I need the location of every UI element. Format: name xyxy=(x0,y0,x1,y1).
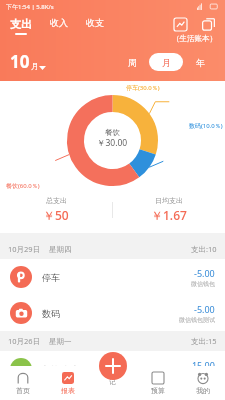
button[interactable]: 餐饮-午餐 xyxy=(0,351,225,387)
staticText: 支出:10 xyxy=(191,244,217,254)
staticText: 月 xyxy=(162,57,171,68)
staticText: （生活账本） xyxy=(172,34,217,43)
button[interactable]: 数码 xyxy=(0,295,225,331)
staticText: 支出:15 xyxy=(191,336,217,346)
button[interactable]: Account books xyxy=(199,15,217,33)
staticText: 记 xyxy=(109,377,116,386)
staticText: 报表 xyxy=(61,386,75,395)
staticText: 日均支出 xyxy=(155,196,183,205)
staticText: ￥30.00 xyxy=(97,137,128,149)
staticText: 停车 xyxy=(42,272,60,283)
staticText: 餐饮(60.0％) xyxy=(6,182,40,190)
button[interactable]: 预算 xyxy=(135,366,180,400)
staticText: 星期一 xyxy=(49,337,72,346)
button[interactable]: Add record xyxy=(99,352,127,380)
staticText: 10月26日 xyxy=(8,336,41,346)
staticText: 预算 xyxy=(151,386,165,395)
staticText: ￥50 xyxy=(43,207,69,223)
button[interactable]: 年 xyxy=(183,53,217,71)
staticText: 10 xyxy=(10,50,30,73)
button[interactable]: 月 xyxy=(149,53,183,71)
staticText: 数码 xyxy=(42,308,60,319)
button[interactable]: 收入 xyxy=(48,15,70,32)
staticText: 星期日 xyxy=(49,392,72,395)
button[interactable]: Chart xyxy=(171,15,189,33)
staticText: 月 xyxy=(31,61,39,71)
staticText: 微信钱包测试 xyxy=(179,316,215,324)
staticText: 停车(30.0％) xyxy=(126,84,160,92)
staticText: 10月18日 xyxy=(8,392,41,395)
staticText: 收入 xyxy=(50,17,68,28)
button[interactable]: 周 xyxy=(115,53,149,71)
staticText: ￥1.67 xyxy=(151,207,187,223)
button[interactable]: 报表 xyxy=(45,366,90,400)
button[interactable]: 支出 xyxy=(8,15,34,37)
staticText: 支出 xyxy=(10,17,32,31)
staticText: 年 xyxy=(196,57,205,68)
staticText: 数码(10.0％) xyxy=(189,122,223,130)
staticText: 支出:15 xyxy=(191,392,217,395)
staticText: 10月29日 xyxy=(8,244,41,254)
staticText: -15.00 xyxy=(189,359,215,371)
staticText: -5.00 xyxy=(194,267,215,279)
staticText: 星期四 xyxy=(49,245,72,254)
button[interactable]: 我的 xyxy=(180,366,225,400)
staticText: 餐饮-午餐 xyxy=(42,363,81,375)
staticText: 收支 xyxy=(86,17,104,28)
staticText: 餐饮 xyxy=(105,128,120,137)
staticText: 总支出 xyxy=(46,196,67,205)
staticText: 微信钱包 xyxy=(191,372,215,380)
staticText: 周 xyxy=(128,57,137,68)
staticText: 微信钱包 xyxy=(191,280,215,288)
button[interactable]: 收支 xyxy=(84,15,106,32)
button[interactable]: 10 xyxy=(10,50,46,73)
staticText: -5.00 xyxy=(194,303,215,315)
button[interactable]: 停车 xyxy=(0,259,225,295)
staticText: 下午1:54 | 5.8K/s xyxy=(6,3,54,11)
staticText: 首页 xyxy=(16,386,30,395)
staticText: 我的 xyxy=(196,386,210,395)
button[interactable]: 首页 xyxy=(0,366,45,400)
